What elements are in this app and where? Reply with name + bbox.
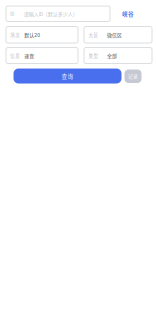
staticText: 默认20 xyxy=(24,31,40,38)
staticText: 微信区 xyxy=(107,31,122,38)
staticText: 请输入ID（默认多少人） xyxy=(24,10,78,17)
staticText: 场次 xyxy=(10,31,20,38)
button[interactable]: 类型 xyxy=(84,47,152,63)
button[interactable]: 信息 xyxy=(6,47,78,63)
button[interactable]: 大区 xyxy=(84,26,152,43)
staticText: 峡谷 xyxy=(122,10,134,18)
button[interactable]: 场次 xyxy=(6,26,78,43)
staticText: 全部 xyxy=(107,52,117,59)
staticText: 记录 xyxy=(128,73,138,80)
staticText: 查询 xyxy=(61,72,73,80)
staticText: ID xyxy=(10,10,14,17)
button[interactable]: ID xyxy=(6,6,110,21)
staticText: 信息 xyxy=(10,52,20,59)
button[interactable]: 查询 xyxy=(13,68,121,83)
button[interactable]: 记录 xyxy=(124,69,141,83)
staticText: 速查 xyxy=(24,52,34,59)
staticText: 类型 xyxy=(88,52,98,59)
button[interactable]: 峡谷 xyxy=(112,6,144,21)
staticText: 大区 xyxy=(88,31,98,38)
